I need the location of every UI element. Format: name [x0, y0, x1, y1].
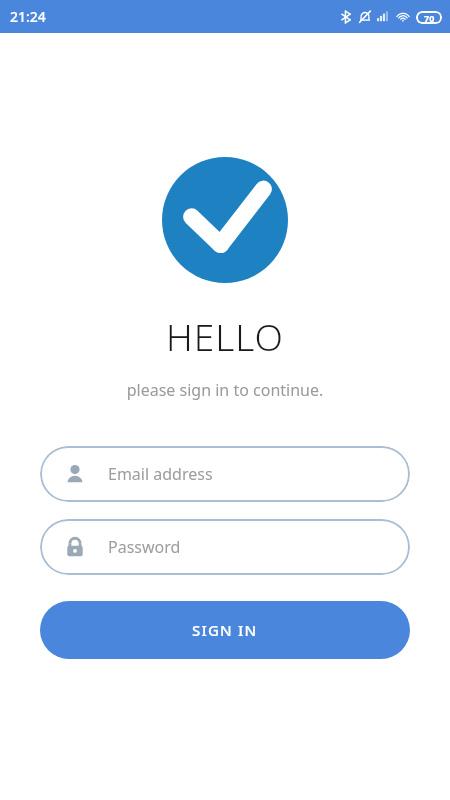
button[interactable]: Sign in: [40, 601, 410, 659]
button[interactable]: Password: [40, 519, 410, 575]
staticText: 70: [424, 12, 435, 24]
staticText: HELLO: [0, 311, 450, 361]
staticText: please sign in to continue.: [0, 379, 450, 401]
button[interactable]: Email address: [40, 446, 410, 502]
staticText: SIGN IN: [192, 620, 258, 640]
staticText: Password: [108, 536, 181, 558]
staticText: 21:24: [10, 7, 46, 26]
staticText: Email address: [108, 463, 213, 485]
